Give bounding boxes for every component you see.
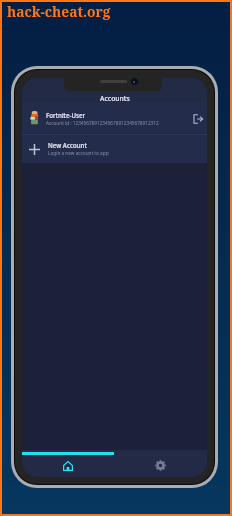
other: Home [63,461,73,471]
staticText: New Account [48,141,87,149]
button[interactable]: Log out [189,110,207,128]
button[interactable]: Home [22,450,114,477]
staticText: Account id : 123456789123456789123456789… [46,120,159,126]
other: Settings [155,460,166,471]
staticText: Fortnite-User [46,111,86,119]
button[interactable]: New Account [22,135,207,163]
button[interactable]: Settings [114,450,207,477]
button[interactable]: Fortnite-User [22,102,207,134]
staticText: Login a new account to app [48,150,109,156]
staticText: hack-cheat.org [7,2,111,21]
staticText: Accounts [100,94,130,103]
